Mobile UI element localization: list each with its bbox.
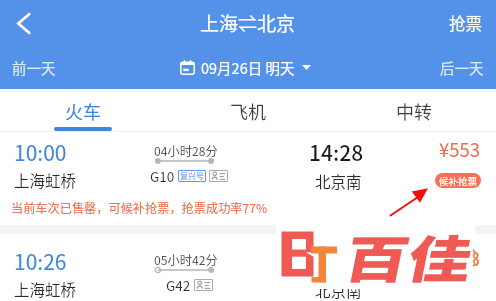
staticText: 火车 — [65, 98, 101, 124]
staticText: 16:08 — [309, 246, 364, 276]
staticText: 北京南 — [315, 170, 362, 192]
staticText: 10:00 — [14, 137, 67, 167]
staticText: G10 — [150, 166, 175, 186]
staticText: 抢票 — [449, 11, 482, 35]
button[interactable]: 当前车次已售罄，可候补抢票，抢票成功率77% — [11, 199, 268, 217]
staticText: G42 — [166, 275, 191, 295]
staticText: 04小时28分 — [154, 142, 218, 160]
staticText: 上海⇌北京 — [200, 9, 296, 37]
staticText: 中转 — [396, 98, 432, 124]
staticText: 05小时42分 — [154, 251, 218, 269]
button[interactable]: 中转 — [331, 89, 496, 132]
button[interactable]: Back — [0, 0, 46, 46]
button[interactable]: 10:26 — [0, 241, 496, 301]
staticText: 上海虹桥 — [14, 169, 77, 191]
staticText: 10:26 — [14, 246, 67, 276]
staticText: 上海虹桥 — [14, 278, 77, 300]
staticText: 09月26日 明天 — [201, 57, 295, 78]
button[interactable]: 火车 — [0, 89, 165, 132]
button[interactable]: 候补抢票 — [435, 173, 481, 188]
staticText: 当前车次已售罄，可候补抢票，抢票成功率77% — [11, 199, 268, 217]
staticText: 复兴号 — [180, 170, 204, 182]
staticText: 飞机 — [230, 98, 266, 124]
button[interactable]: 抢票 — [449, 0, 482, 46]
staticText: 北京南 — [315, 279, 362, 301]
button[interactable]: 10:00 — [0, 132, 496, 192]
button[interactable]: 09月26日 明天 — [180, 57, 311, 78]
staticText: 候补抢票 — [439, 174, 478, 188]
staticText: 后一天 — [440, 57, 484, 78]
button[interactable]: 后一天 — [428, 46, 496, 89]
staticText: ¥553 — [439, 136, 481, 163]
staticText: 前一天 — [12, 57, 56, 78]
staticText: ¥553 — [439, 245, 481, 272]
staticText: 14:28 — [309, 137, 364, 167]
button[interactable]: 前一天 — [0, 46, 68, 89]
button[interactable]: 飞机 — [165, 89, 330, 132]
